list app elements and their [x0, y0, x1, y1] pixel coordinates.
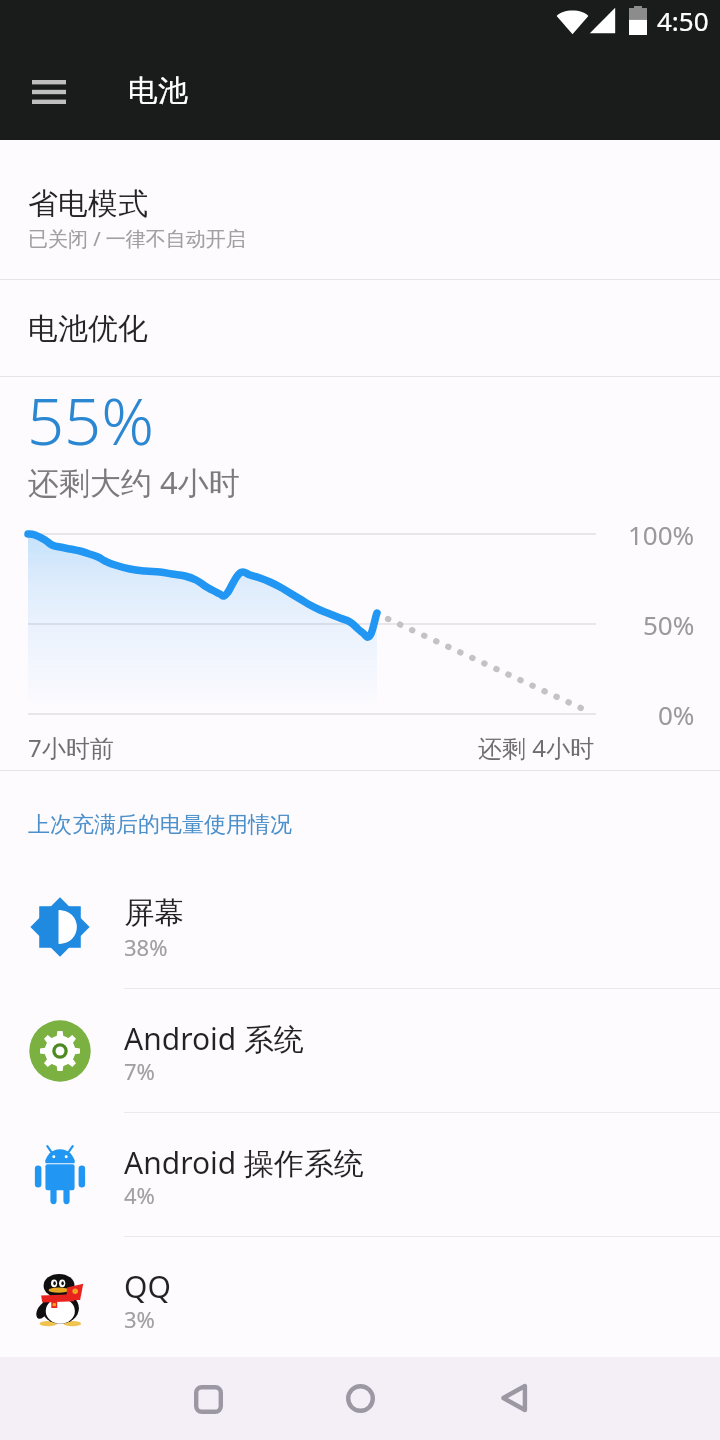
staticText: 4:50: [657, 3, 709, 38]
button[interactable]: QQ: [0, 1238, 720, 1360]
staticText: Android 系统: [124, 1018, 305, 1059]
staticText: 上次充满后的电量使用情况: [28, 811, 292, 839]
staticText: 已关闭 / 一律不自动开启: [28, 225, 246, 252]
staticText: 50%: [643, 607, 695, 642]
button[interactable]: Android 系统: [0, 990, 720, 1112]
button[interactable]: 电池优化: [0, 280, 720, 376]
staticText: 3%: [124, 1304, 155, 1334]
button[interactable]: Menu: [16, 62, 82, 122]
staticText: 屏幕: [124, 894, 184, 932]
staticText: QQ: [124, 1266, 171, 1307]
button[interactable]: Back: [484, 1368, 544, 1428]
staticText: 55%: [27, 376, 155, 465]
staticText: 38%: [124, 932, 168, 962]
staticText: Android 操作系统: [124, 1142, 365, 1183]
staticText: 100%: [628, 517, 695, 552]
button[interactable]: 屏幕: [0, 866, 720, 988]
staticText: 还剩 4小时: [478, 731, 594, 764]
staticText: 7小时前: [28, 731, 114, 764]
staticText: 0%: [658, 697, 695, 732]
staticText: 7%: [124, 1056, 155, 1086]
button[interactable]: Android 操作系统: [0, 1114, 720, 1236]
button[interactable]: Home: [330, 1368, 390, 1428]
button[interactable]: 省电模式: [0, 140, 720, 279]
staticText: 省电模式: [28, 185, 148, 223]
staticText: 电池优化: [28, 310, 148, 348]
button[interactable]: 上次充满后的电量使用情况: [28, 811, 292, 839]
button[interactable]: Recents: [178, 1369, 238, 1429]
staticText: 电池: [128, 72, 188, 110]
staticText: 4%: [124, 1180, 155, 1210]
staticText: 还剩大约 4小时: [28, 461, 240, 503]
